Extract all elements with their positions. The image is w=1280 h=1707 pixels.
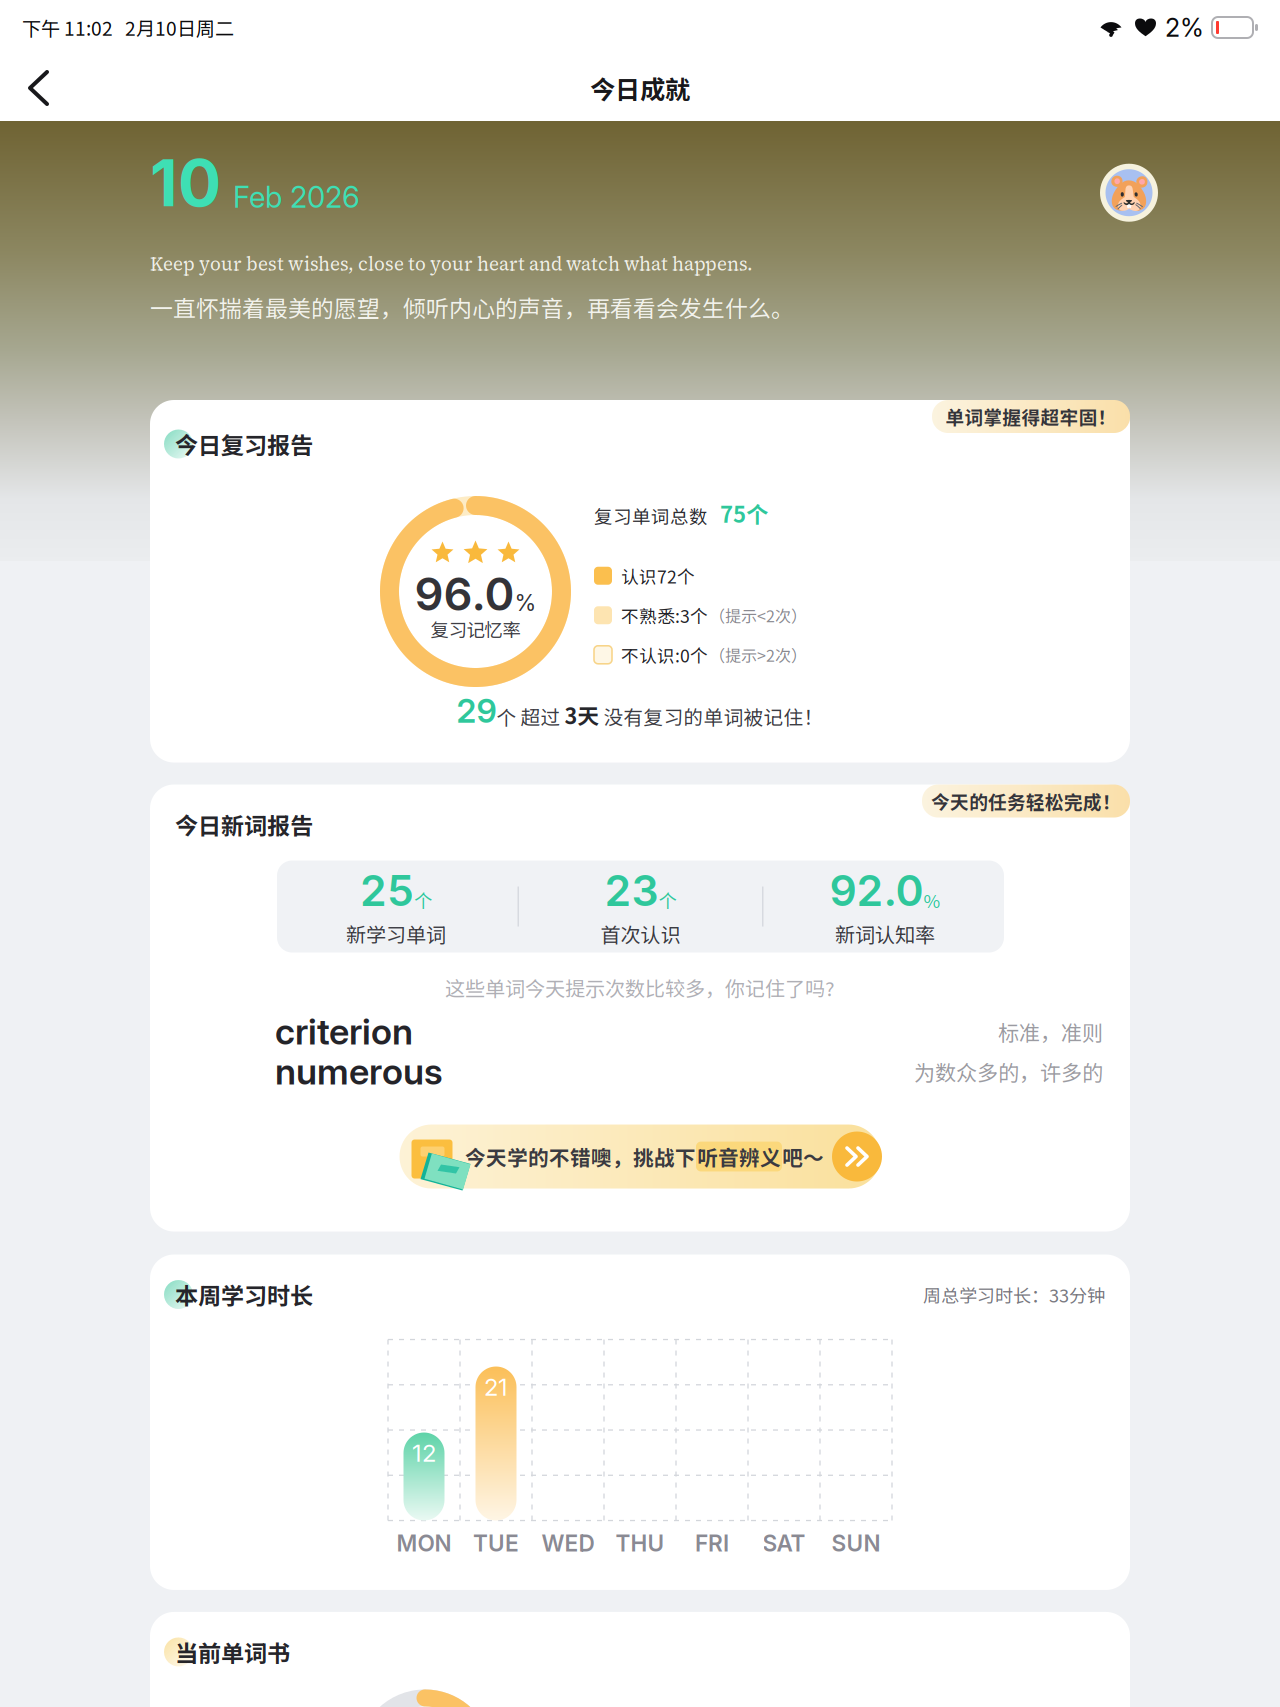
staticText: 今天的任务轻松完成！ (931, 787, 1121, 814)
staticText: numerous (275, 1050, 443, 1093)
staticText: 2% (1165, 12, 1204, 43)
staticText: WED (541, 1529, 594, 1557)
staticText: 吧～ (782, 1142, 824, 1171)
staticText: 今天学的不错噢，挑战下 (465, 1142, 696, 1171)
staticText: 不熟悉:3个 (621, 602, 708, 628)
staticText: 今日成就 (590, 70, 690, 106)
staticText: 96.0 (414, 567, 514, 621)
staticText: 为数众多的，许多的 (914, 1056, 1103, 1087)
staticText: 个 (658, 887, 676, 913)
staticText: 标准，准则 (998, 1016, 1103, 1047)
staticText: 一直怀揣着最美的愿望，倾听内心的声音，再看看会发生什么。 (150, 290, 794, 324)
staticText: 29 (456, 691, 496, 730)
staticText: SAT (762, 1529, 805, 1557)
button[interactable]: Profile (1100, 164, 1158, 222)
staticText: 21 (484, 1372, 508, 1401)
staticText: 周总学习时长：33分钟 (923, 1281, 1105, 1308)
staticText: TUE (473, 1529, 519, 1557)
staticText: criterion (275, 1010, 413, 1053)
staticText: 个 (414, 887, 432, 913)
staticText: 75个 (720, 497, 768, 529)
staticText: 这些单词今天提示次数比较多，你记住了吗? (445, 973, 835, 1002)
staticText: 92.0 (829, 865, 923, 916)
staticText: 🐹 (1106, 171, 1152, 214)
staticText: Feb 2026 (233, 179, 360, 215)
staticText: 本周学习时长 (175, 1278, 313, 1311)
staticText: 听音辨义 (697, 1142, 781, 1171)
staticText: 首次认识 (600, 919, 680, 948)
staticText: 复习单词总数 (594, 502, 708, 529)
staticText: 个 超过 (496, 702, 564, 730)
staticText: % (514, 589, 536, 616)
staticText: FRI (695, 1529, 729, 1557)
staticText: 当前单词书 (175, 1635, 290, 1669)
staticText: Keep your best wishes, close to your hea… (150, 251, 753, 277)
staticText: 不认识:0个 (621, 642, 708, 667)
staticText: % (923, 887, 940, 913)
staticText: （提示<2次） (709, 604, 807, 627)
staticText: 下午 11:02 2月10日周二 (22, 14, 234, 41)
staticText: 没有复习的单词被记住！ (599, 702, 823, 730)
staticText: 单词掌握得超牢固！ (945, 403, 1116, 430)
staticText: 今日新词报告 (175, 808, 313, 841)
staticText: 23 (604, 865, 658, 916)
staticText: 3天 (564, 699, 599, 730)
staticText: 新词认知率 (835, 919, 935, 948)
staticText: 新学习单词 (346, 919, 446, 948)
staticText: 认识72个 (621, 563, 695, 588)
button[interactable]: 今天学的不错噢，挑战下 (399, 1123, 880, 1189)
staticText: 12 (412, 1438, 436, 1467)
staticText: 今日复习报告 (175, 427, 313, 461)
staticText: MON (396, 1529, 451, 1557)
staticText: （提示>2次） (709, 643, 807, 666)
staticText: 复习记忆率 (430, 616, 520, 642)
staticText: THU (615, 1529, 664, 1557)
staticText: SUN (831, 1529, 880, 1557)
staticText: 25 (360, 865, 414, 916)
button[interactable]: Back (0, 58, 77, 118)
staticText: 10 (150, 144, 221, 222)
